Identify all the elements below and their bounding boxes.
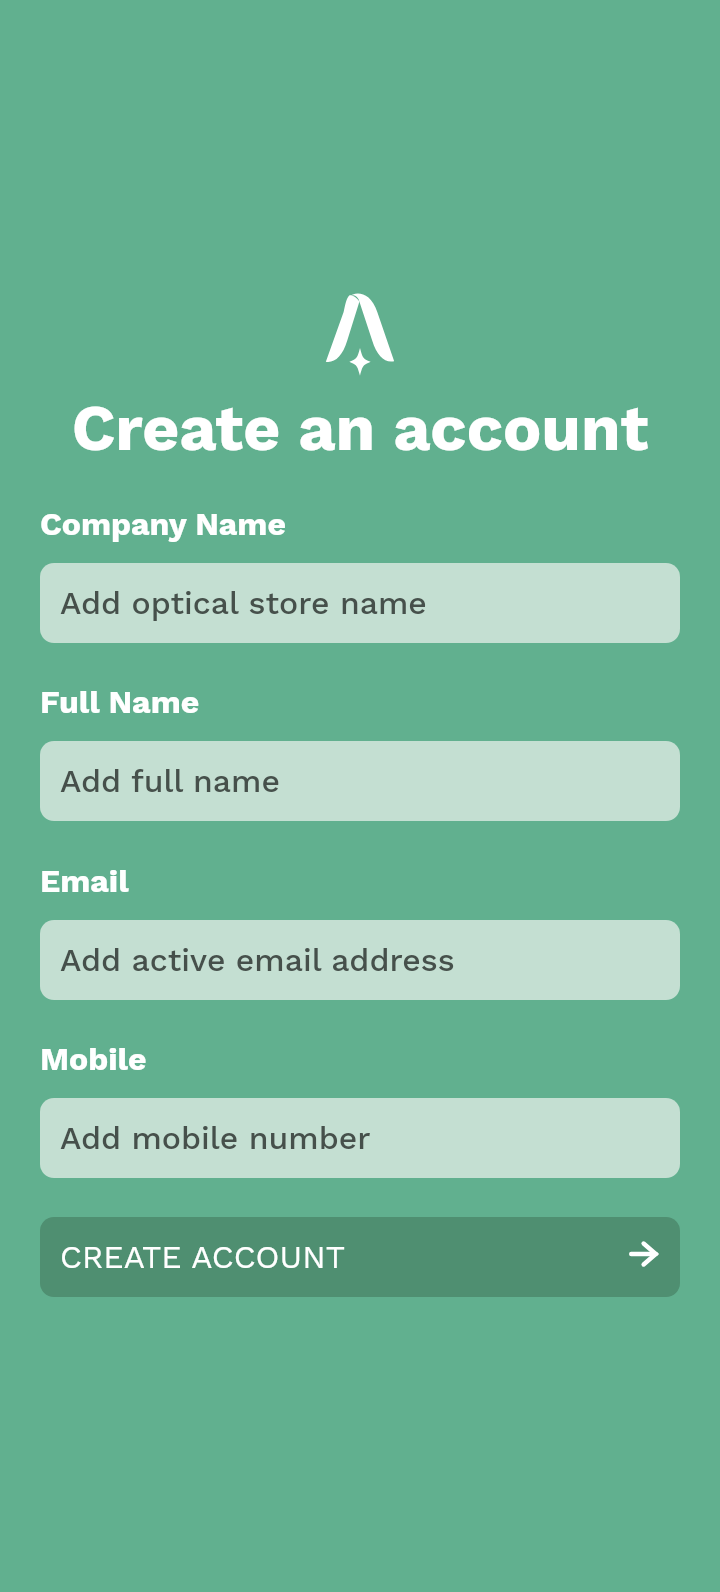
button[interactable]: Add mobile number — [40, 1098, 680, 1178]
staticText: Create an account — [0, 390, 720, 465]
staticText: Email — [40, 862, 129, 900]
other: App logo — [325, 292, 395, 373]
button[interactable]: Add full name — [40, 741, 680, 821]
button[interactable]: Add optical store name — [40, 563, 680, 643]
staticText: Add mobile number — [60, 1119, 371, 1157]
staticText: Full Name — [40, 683, 200, 721]
button[interactable]: Add active email address — [40, 920, 680, 1000]
staticText: Add optical store name — [60, 584, 427, 622]
staticText: Mobile — [40, 1040, 147, 1078]
staticText: Company Name — [40, 505, 286, 543]
other: Continue — [629, 1241, 658, 1267]
staticText: Add full name — [60, 762, 280, 800]
button[interactable]: CREATE ACCOUNT — [40, 1217, 680, 1297]
staticText: CREATE ACCOUNT — [60, 1238, 345, 1276]
staticText: Add active email address — [60, 941, 455, 979]
